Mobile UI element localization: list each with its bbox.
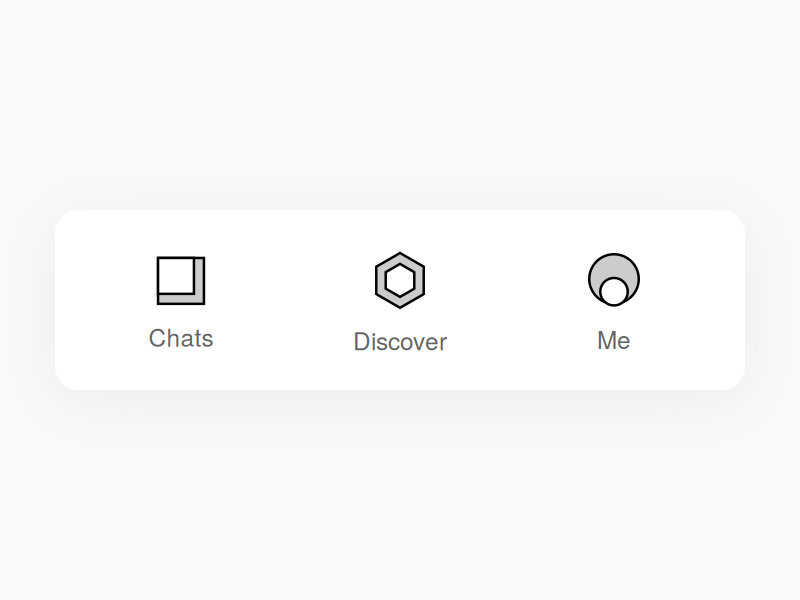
staticText: Me (597, 321, 631, 356)
staticText: Chats (148, 319, 213, 354)
button[interactable]: Discover (307, 210, 493, 390)
button[interactable]: Me (493, 210, 735, 390)
staticText: Discover (353, 322, 447, 357)
button[interactable]: Chats (55, 210, 307, 390)
